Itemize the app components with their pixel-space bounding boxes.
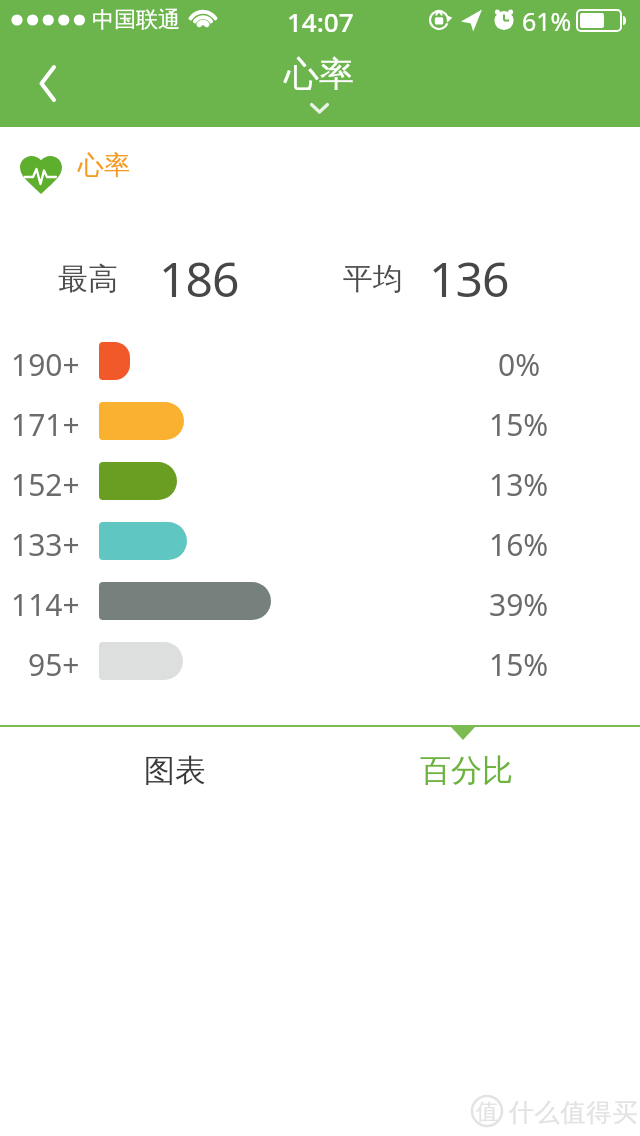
staticText: 什么值得买 [508,1097,638,1125]
staticText: 14:07 [287,4,354,36]
staticText: 0% [498,344,541,378]
staticText: 百分比 [420,751,513,790]
staticText: 平均 [343,260,403,298]
staticText: 152+ [11,464,80,498]
staticText: 15% [489,404,549,438]
button[interactable]: 百分比 [403,750,529,790]
staticText: 186 [159,246,239,310]
staticText: 心率 [284,52,354,96]
staticText: 114+ [11,584,80,618]
staticText: 值 [476,1098,498,1124]
button[interactable]: 心率 [259,52,379,96]
button[interactable]: 图表 [115,750,235,790]
staticText: 16% [489,524,549,558]
staticText: 中国联通 [92,6,180,34]
staticText: 95+ [28,644,80,678]
button[interactable] [20,55,80,115]
staticText: 61% [522,4,572,36]
staticText: 13% [489,464,549,498]
staticText: 图表 [144,751,206,790]
staticText: 39% [489,584,549,618]
staticText: 133+ [11,524,80,558]
staticText: 最高 [58,260,118,298]
staticText: 心率 [78,149,130,182]
staticText: 15% [489,644,549,678]
staticText: 136 [429,246,509,310]
staticText: 190+ [11,344,80,378]
staticText: 171+ [11,404,80,438]
